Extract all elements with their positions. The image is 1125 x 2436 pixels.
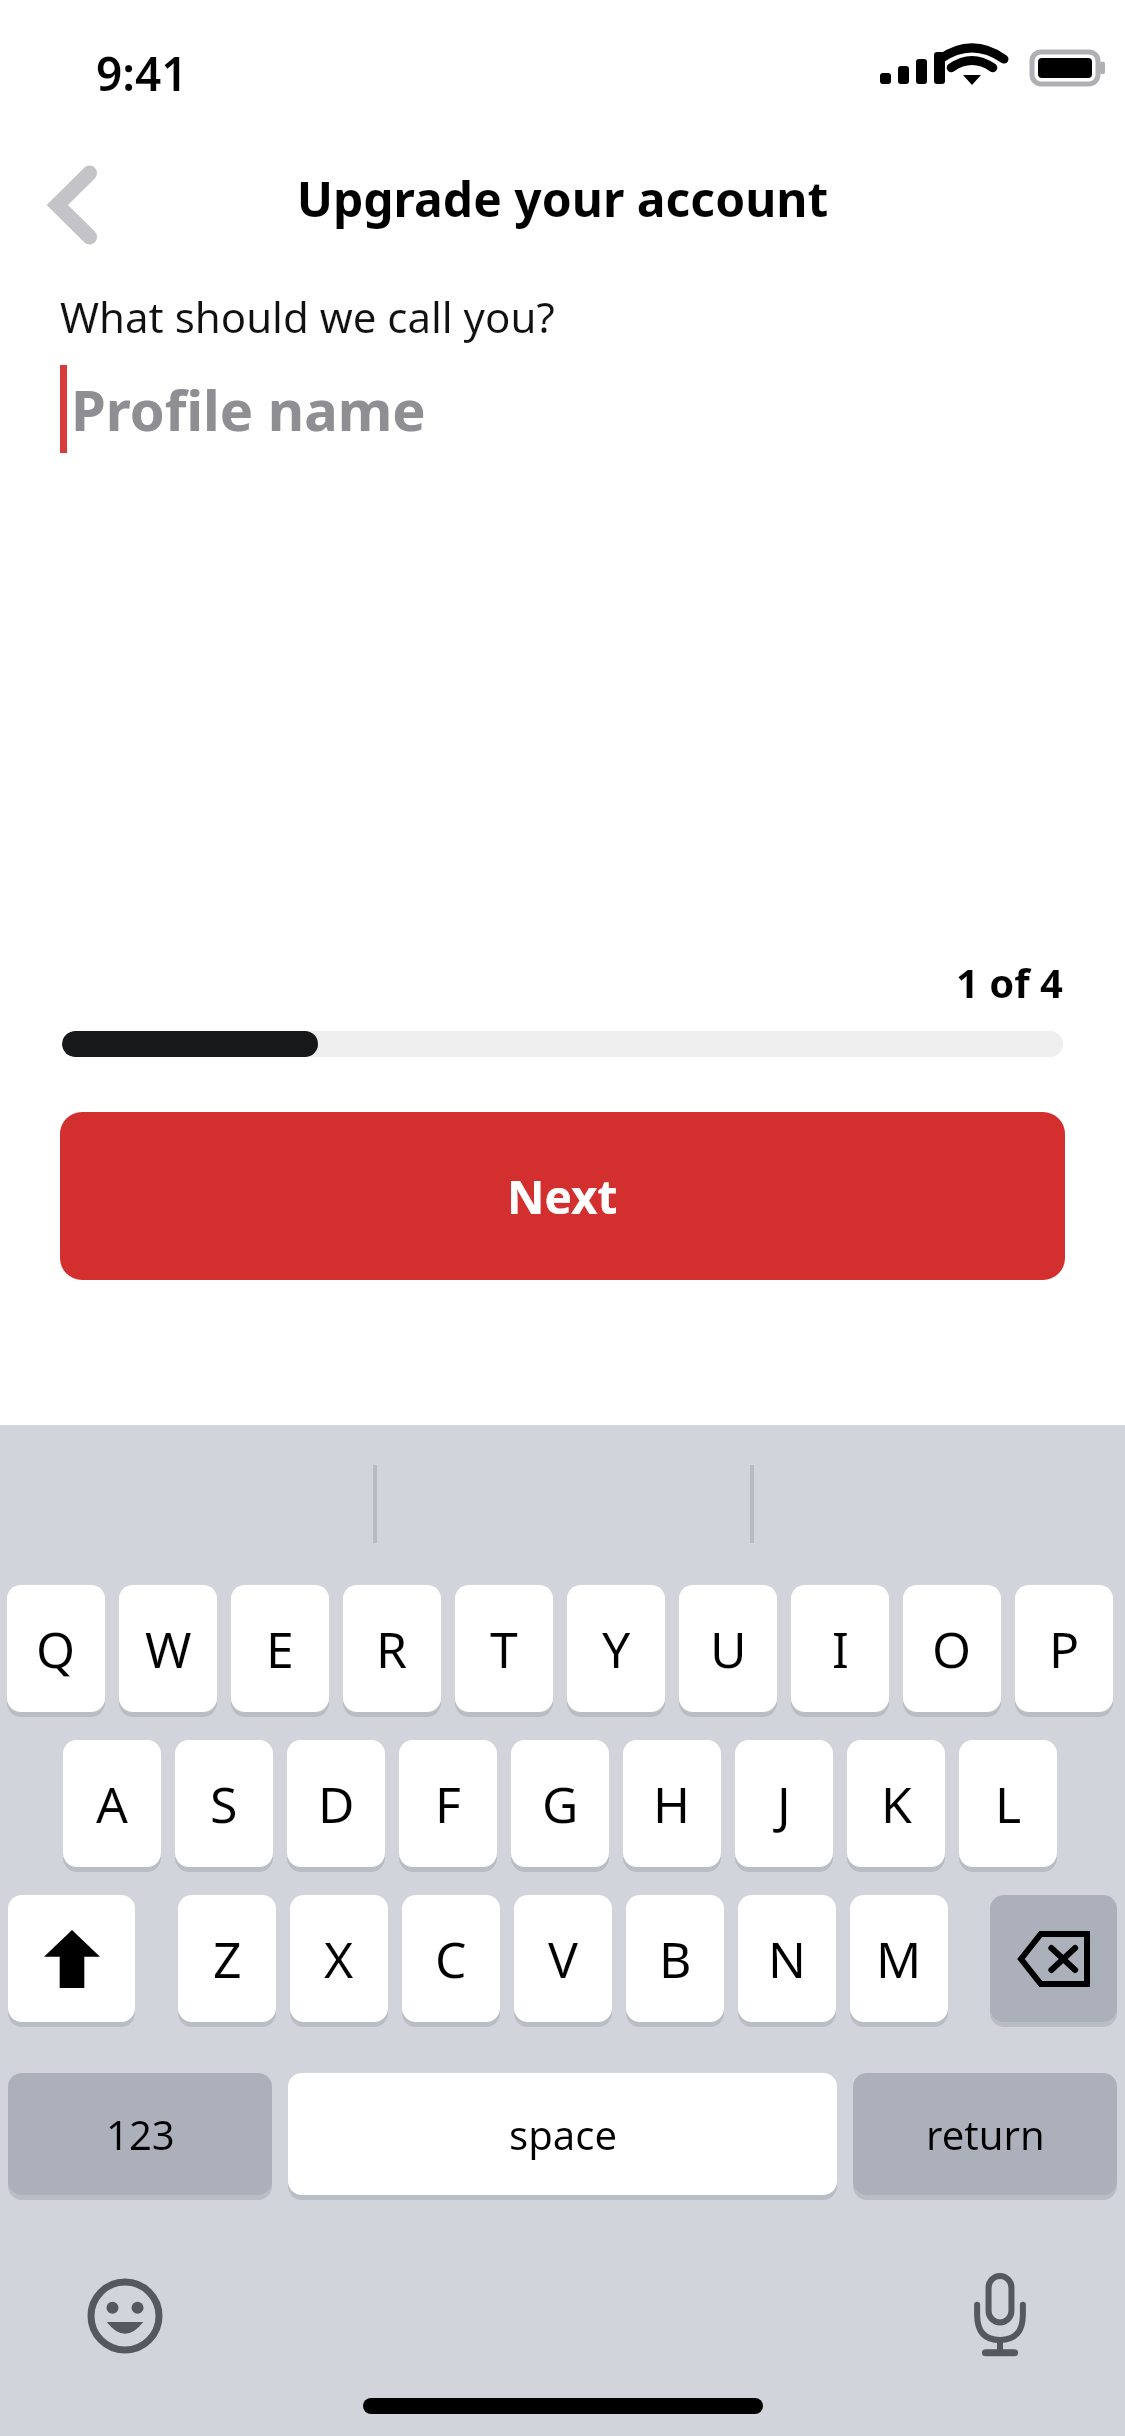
staticText: U [710,1615,747,1683]
button[interactable]: Next [60,1112,1065,1280]
staticText: O [932,1615,972,1683]
button[interactable]: I [791,1585,889,1712]
button[interactable]: K [847,1740,945,1867]
button[interactable]: J [735,1740,833,1867]
staticText: Z [213,1925,242,1993]
staticText: L [995,1770,1022,1838]
staticText: H [653,1770,691,1838]
button[interactable]: E [231,1585,329,1712]
button[interactable]: return [853,2073,1117,2195]
button[interactable]: S [175,1740,273,1867]
button[interactable]: Backspace [990,1895,1117,2022]
staticText: N [768,1925,806,1993]
button[interactable]: Y [567,1585,665,1712]
button[interactable]: Profile name [60,359,1065,459]
button[interactable]: C [402,1895,500,2022]
staticText: D [318,1770,355,1838]
staticText: 123 [106,2107,175,2161]
staticText: P [1049,1615,1080,1683]
button[interactable]: Emoji [70,2261,180,2371]
staticText: return [926,2107,1045,2161]
button[interactable]: B [626,1895,724,2022]
staticText: B [659,1925,692,1993]
staticText: V [548,1925,578,1993]
button[interactable]: P [1015,1585,1113,1712]
button[interactable]: X [290,1895,388,2022]
button[interactable]: L [959,1740,1057,1867]
staticText: F [435,1770,461,1838]
staticText: Upgrade your account [0,166,1125,231]
button[interactable]: Z [178,1895,276,2022]
staticText: W [145,1615,192,1683]
button[interactable]: G [511,1740,609,1867]
staticText: S [210,1770,238,1838]
button[interactable]: space [288,2073,837,2195]
staticText: E [266,1615,294,1683]
button[interactable]: V [514,1895,612,2022]
staticText: M [876,1925,922,1993]
staticText: R [376,1615,408,1683]
staticText: Next [507,1165,618,1228]
staticText: Profile name [71,371,426,447]
staticText: Q [36,1615,76,1683]
staticText: space [509,2107,617,2161]
button[interactable]: 123 [8,2073,272,2195]
staticText: C [435,1925,467,1993]
staticText: Y [602,1615,631,1683]
button[interactable]: Q [7,1585,105,1712]
button[interactable]: N [738,1895,836,2022]
button[interactable]: A [63,1740,161,1867]
button[interactable]: F [399,1740,497,1867]
button[interactable]: M [850,1895,948,2022]
button[interactable]: Back [18,150,128,260]
staticText: 9:41 [96,42,296,105]
button[interactable]: O [903,1585,1001,1712]
staticText: K [881,1770,912,1838]
staticText: X [324,1925,354,1993]
button[interactable]: Dictation [945,2261,1055,2371]
staticText: 1 of 4 [0,955,1063,1009]
staticText: G [542,1770,579,1838]
button[interactable]: H [623,1740,721,1867]
staticText: T [490,1615,518,1683]
button[interactable]: D [287,1740,385,1867]
button[interactable]: U [679,1585,777,1712]
staticText: I [832,1615,849,1683]
button[interactable]: W [119,1585,217,1712]
staticText: What should we call you? [60,288,555,345]
staticText: J [777,1770,791,1838]
button[interactable]: Shift [8,1895,135,2022]
staticText: A [96,1770,128,1838]
button[interactable]: T [455,1585,553,1712]
button[interactable]: R [343,1585,441,1712]
